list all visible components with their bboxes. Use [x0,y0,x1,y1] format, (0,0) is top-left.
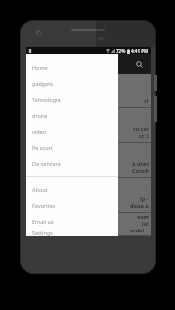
button[interactable]: drone [26,107,118,123]
staticText: Favorites [32,202,56,209]
staticText: ardel… [130,227,149,232]
staticText: la! [142,220,149,227]
button[interactable]: Favorites [26,197,118,213]
button[interactable]: gadgets [26,75,118,91]
button[interactable]: ci [26,74,151,107]
button[interactable]: video [26,123,118,139]
staticText: Home [32,64,48,71]
staticText: Tehnologie [32,96,61,103]
button[interactable]: Tehnologie [26,91,118,107]
staticText: lp - [140,195,149,202]
staticText: Pe scurt [32,144,53,151]
button[interactable]: lp - [26,178,151,212]
staticText: Email us [32,218,54,225]
staticText: 72% [116,48,126,54]
staticText: video [32,128,47,135]
staticText: cu cei [133,125,149,132]
button[interactable]: About [26,181,118,197]
staticText: eam [137,213,149,220]
button[interactable]: Settings [26,229,118,236]
button[interactable]: Email us [26,213,118,229]
staticText: 4:41 PM [131,48,149,54]
staticText: gadgets [32,80,53,87]
button[interactable]: a unei [26,143,151,177]
button[interactable]: eam [26,213,151,235]
button[interactable]: Pe scurt [26,139,118,155]
staticText: About [32,186,48,193]
button[interactable]: Search [132,57,146,71]
button[interactable]: Home [26,59,118,75]
staticText: Settings [32,229,53,236]
staticText: De vanzare [32,160,61,167]
button[interactable]: cu cei [26,108,151,142]
staticText: a unei [132,160,149,167]
staticText: ci [144,97,149,104]
staticText: drone [32,112,48,119]
staticText: Conch [132,167,149,174]
staticText: st :) [139,132,149,139]
button[interactable]: De vanzare [26,155,118,171]
staticText: doua a [130,202,149,209]
